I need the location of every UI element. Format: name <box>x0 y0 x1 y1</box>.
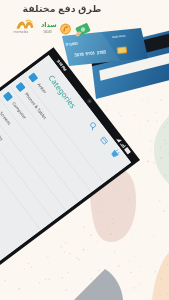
button[interactable] <box>0 0 169 300</box>
